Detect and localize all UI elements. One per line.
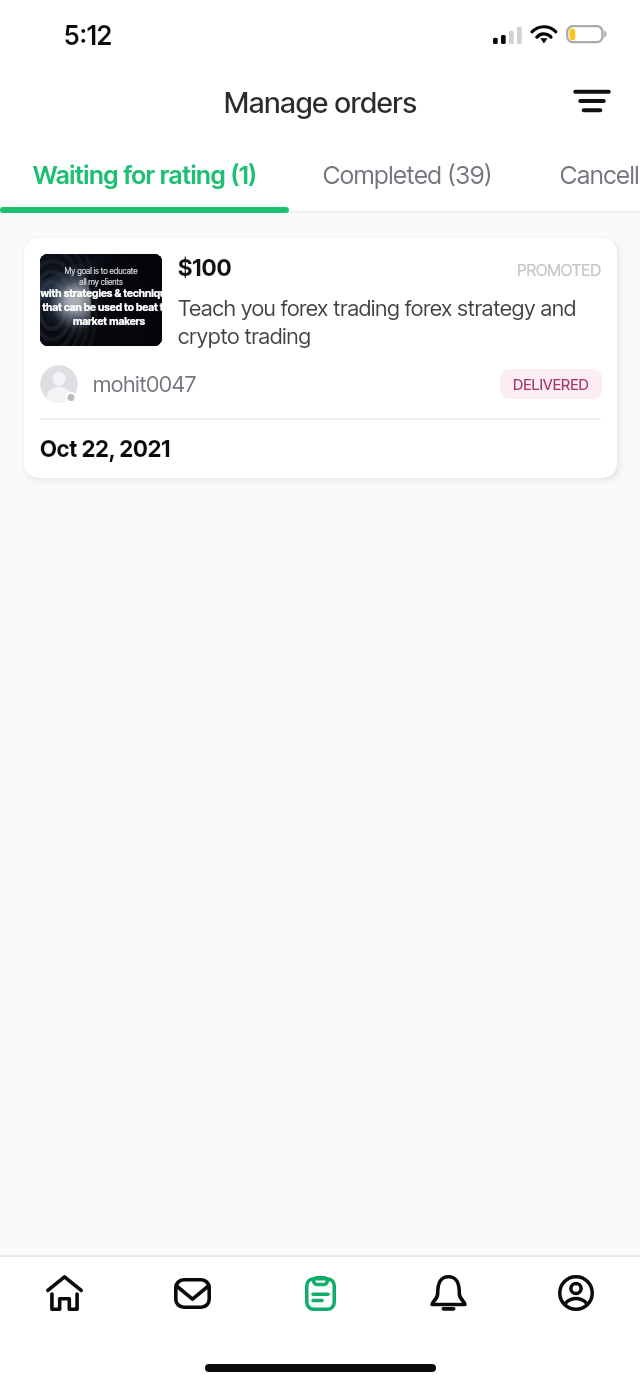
button[interactable]: Completed (39) — [289, 142, 526, 207]
staticText: mohit0047 — [93, 371, 197, 398]
staticText: My goal is to educate all my clients — [64, 266, 138, 287]
staticText: DELIVERED — [513, 375, 589, 393]
button[interactable]: Orders — [256, 1257, 384, 1329]
button[interactable]: Filter orders — [564, 73, 620, 129]
staticText: $100 — [178, 254, 232, 282]
button[interactable]: Notifications — [384, 1257, 512, 1329]
staticText: 5:12 — [64, 20, 112, 51]
staticText: Completed (39) — [323, 160, 493, 190]
button[interactable]: Waiting for rating (1) — [0, 142, 289, 207]
staticText: Oct 22, 2021 — [40, 435, 171, 462]
staticText: Teach you forex trading forex strategy a… — [178, 295, 601, 350]
button[interactable]: My goal is to educate all my clients — [24, 238, 617, 478]
button[interactable]: Profile — [512, 1257, 640, 1329]
staticText: Waiting for rating (1) — [33, 160, 257, 190]
button[interactable]: Cancelled (3) — [526, 142, 640, 207]
staticText: Cancelled (3) — [560, 160, 640, 190]
button[interactable]: Inbox — [128, 1257, 256, 1329]
button[interactable]: Home — [0, 1257, 128, 1329]
staticText: Manage orders — [224, 85, 417, 120]
staticText: with strategies & techniques that can be… — [40, 287, 162, 328]
staticText: PROMOTED — [517, 260, 601, 279]
